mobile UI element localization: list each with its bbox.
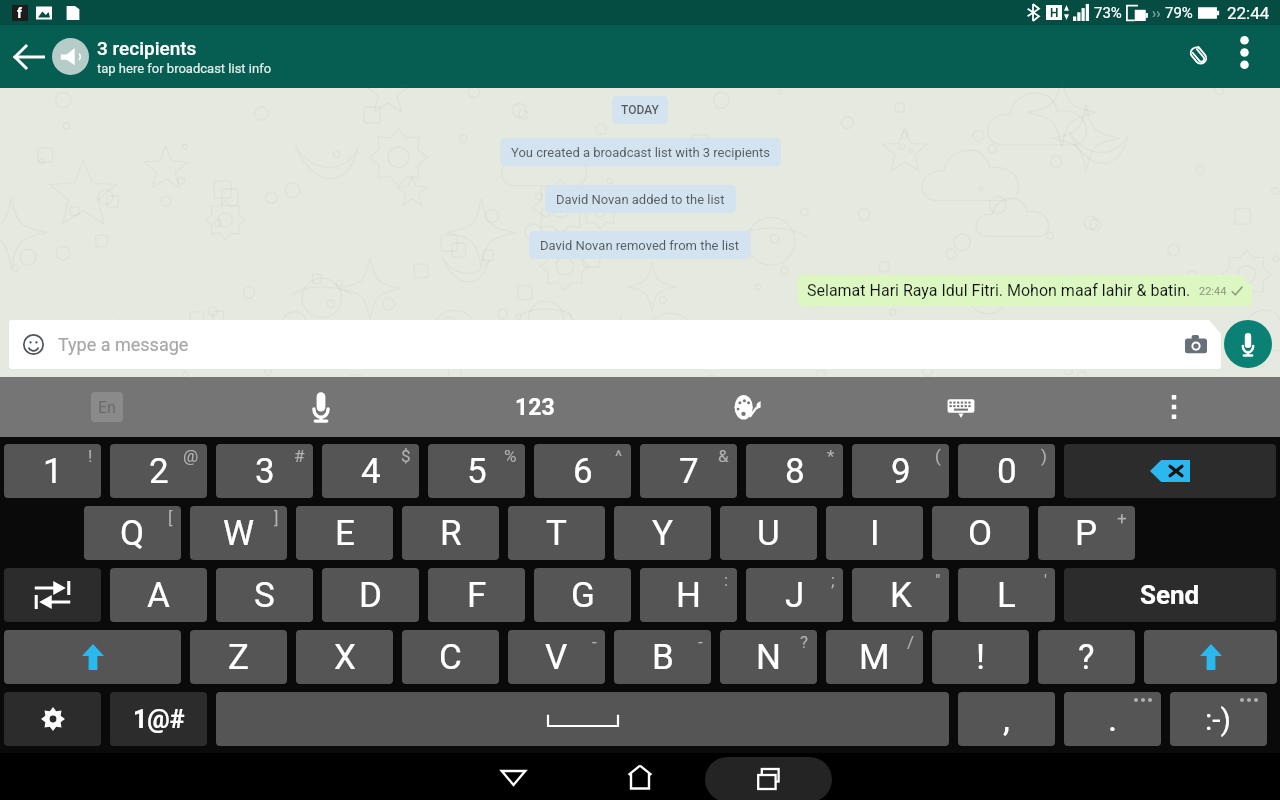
button[interactable]: Record voice message <box>1224 320 1272 368</box>
staticText: 0 <box>997 451 1017 492</box>
button[interactable]: David Novan removed from the list <box>529 231 751 259</box>
button[interactable]: , <box>958 692 1055 746</box>
button[interactable]: L <box>958 568 1055 622</box>
button[interactable]: 123 <box>428 377 641 437</box>
button[interactable]: X <box>296 630 393 684</box>
staticText: D <box>359 575 382 616</box>
staticText: 6 <box>573 451 593 492</box>
button[interactable]: Z <box>190 630 287 684</box>
button[interactable]: Send <box>1064 568 1276 622</box>
staticText: ' <box>1044 570 1047 590</box>
button[interactable]: R <box>402 506 499 560</box>
button[interactable]: 3 recipients <box>52 25 1176 88</box>
button[interactable]: 1 <box>4 444 101 498</box>
button[interactable]: V <box>508 630 605 684</box>
staticText: F <box>467 575 487 616</box>
button[interactable]: David Novan added to the list <box>545 185 736 213</box>
button[interactable]: F <box>428 568 525 622</box>
button[interactable]: 1@# <box>110 692 207 746</box>
staticText: L <box>997 575 1016 616</box>
staticText: 5 <box>467 451 487 492</box>
staticText: f <box>17 5 23 21</box>
button[interactable]: D <box>322 568 419 622</box>
staticText: E <box>335 513 355 554</box>
button[interactable]: P <box>1038 506 1135 560</box>
button[interactable]: Theme <box>641 377 854 437</box>
staticText: :-) <box>1205 702 1232 737</box>
staticText: Y <box>652 513 674 554</box>
button[interactable]: Hide keyboard <box>854 377 1067 437</box>
staticText: ! <box>88 446 93 466</box>
button[interactable]: Recents <box>705 757 832 800</box>
staticText: 7 <box>679 451 699 492</box>
button[interactable] <box>4 692 101 746</box>
button[interactable]: Type a message <box>9 320 1221 369</box>
staticText: 3 recipients <box>97 37 197 59</box>
staticText: 9 <box>891 451 911 492</box>
staticText: ! <box>976 637 986 678</box>
staticText: 22:44 <box>1199 285 1227 298</box>
button[interactable]: Q <box>84 506 181 560</box>
staticText: $ <box>401 446 411 466</box>
button[interactable]: Back <box>449 753 577 800</box>
button[interactable]: . <box>1064 692 1161 746</box>
button[interactable]: S <box>216 568 313 622</box>
button[interactable]: Y <box>614 506 711 560</box>
staticText: ] <box>274 508 279 528</box>
button[interactable] <box>216 692 949 746</box>
staticText: X <box>334 637 356 678</box>
button[interactable]: U <box>720 506 817 560</box>
button[interactable] <box>1064 444 1276 498</box>
staticText: 1 <box>43 451 63 492</box>
staticText: " <box>935 570 941 590</box>
button[interactable]: N <box>720 630 817 684</box>
button[interactable]: You created a broadcast list with 3 reci… <box>500 138 781 166</box>
button[interactable]: E <box>296 506 393 560</box>
button[interactable]: K <box>852 568 949 622</box>
button[interactable]: 0 <box>958 444 1055 498</box>
button[interactable]: 2 <box>110 444 207 498</box>
button[interactable]: Back <box>0 25 52 88</box>
button[interactable]: I <box>826 506 923 560</box>
staticText: & <box>718 446 729 466</box>
button[interactable]: B <box>614 630 711 684</box>
button[interactable]: More <box>1067 377 1280 437</box>
button[interactable]: 7 <box>640 444 737 498</box>
button[interactable]: O <box>932 506 1029 560</box>
staticText: 22:44 <box>1227 3 1270 23</box>
button[interactable]: En <box>0 377 214 437</box>
button[interactable]: C <box>402 630 499 684</box>
button[interactable]: J <box>746 568 843 622</box>
button[interactable]: Voice input <box>214 377 428 437</box>
button[interactable]: A <box>110 568 207 622</box>
button[interactable]: 9 <box>852 444 949 498</box>
button[interactable]: :-) <box>1170 692 1267 746</box>
button[interactable]: ! <box>932 630 1029 684</box>
button[interactable]: 3 <box>216 444 313 498</box>
button[interactable]: 4 <box>322 444 419 498</box>
button[interactable]: ? <box>1038 630 1135 684</box>
button[interactable]: M <box>826 630 923 684</box>
button[interactable]: 5 <box>428 444 525 498</box>
staticText: tap here for broadcast list info <box>97 61 272 76</box>
button[interactable]: More options <box>1232 25 1280 88</box>
button[interactable]: H <box>640 568 737 622</box>
button[interactable]: TODAY <box>612 96 668 124</box>
staticText: J <box>785 575 805 616</box>
staticText: + <box>1117 508 1127 528</box>
button[interactable]: Home <box>576 753 704 800</box>
button[interactable]: Attach <box>1176 25 1232 88</box>
button[interactable]: 8 <box>746 444 843 498</box>
button[interactable]: W <box>190 506 287 560</box>
staticText: Selamat Hari Raya Idul Fitri. Mohon maaf… <box>807 281 1191 300</box>
button[interactable]: Selamat Hari Raya Idul Fitri. Mohon maaf… <box>798 275 1252 306</box>
button[interactable] <box>4 568 101 622</box>
staticText: 2 <box>149 451 169 492</box>
button[interactable]: T <box>508 506 605 560</box>
button[interactable] <box>4 630 181 684</box>
staticText: T <box>546 513 567 554</box>
button[interactable]: 6 <box>534 444 631 498</box>
button[interactable] <box>1144 630 1277 684</box>
button[interactable]: G <box>534 568 631 622</box>
staticText: 3 <box>255 451 275 492</box>
